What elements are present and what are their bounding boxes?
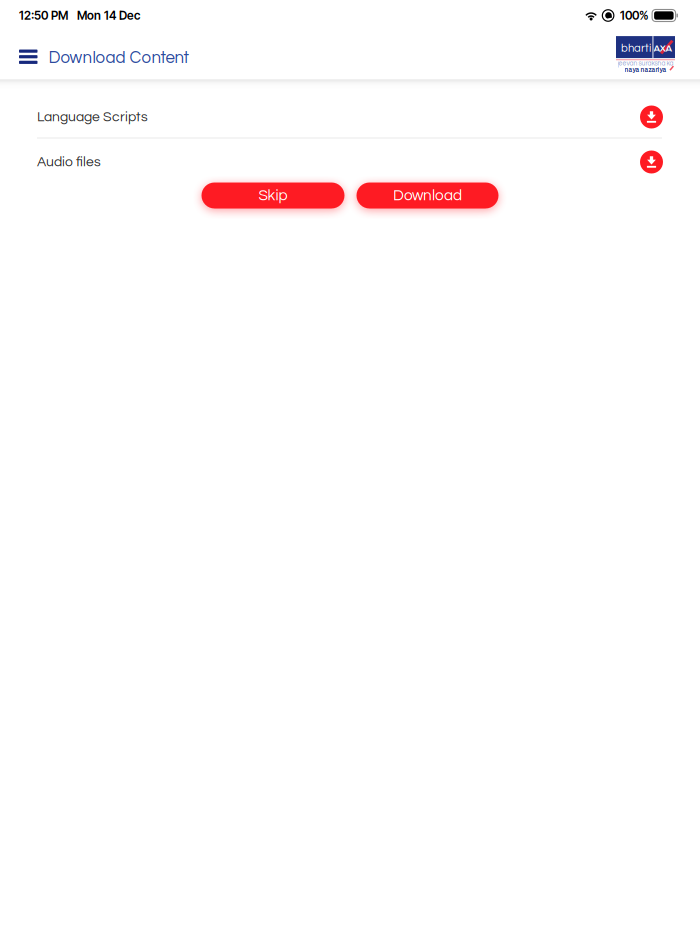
staticText: bharti	[621, 42, 651, 54]
staticText: Mon 14 Dec	[77, 8, 140, 23]
staticText: AXA	[653, 43, 672, 54]
button[interactable]: Language Scripts	[0, 94, 700, 137]
button[interactable]: Audio files	[0, 138, 700, 182]
staticText: Download	[393, 188, 462, 203]
button[interactable]: Menu	[0, 36, 48, 80]
staticText: Skip	[258, 188, 287, 203]
staticText: jeevan suraksha ka	[617, 60, 673, 67]
staticText: naya nazariya	[624, 66, 666, 73]
button[interactable]: Skip	[201, 182, 344, 208]
button[interactable]: Download	[356, 182, 498, 208]
staticText: Language Scripts	[37, 110, 148, 124]
staticText: Audio files	[37, 155, 101, 169]
staticText: 100%	[620, 8, 649, 23]
staticText: Download Content	[48, 49, 189, 66]
staticText: 12:50 PM	[19, 8, 68, 23]
